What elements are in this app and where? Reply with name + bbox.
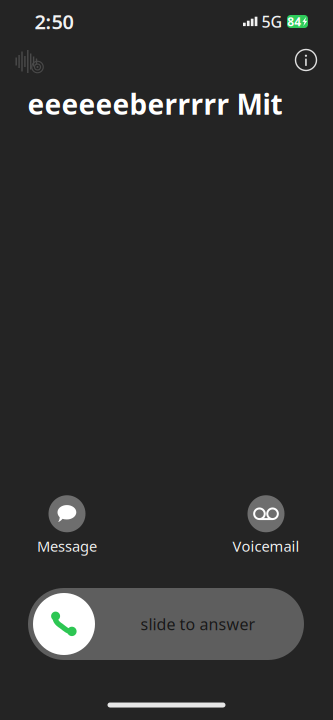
button[interactable]: Call details xyxy=(293,47,319,73)
staticText: Message xyxy=(37,536,97,556)
staticText: Voicemail xyxy=(232,536,299,556)
staticText: 5G xyxy=(261,11,282,32)
staticText: slide to answer xyxy=(140,613,255,635)
button[interactable]: slide to answer xyxy=(28,588,304,660)
staticText: 2:50 xyxy=(34,8,73,35)
button[interactable]: Voicemail xyxy=(220,497,312,553)
button[interactable]: Message xyxy=(21,497,113,553)
staticText: 84 xyxy=(287,13,301,29)
staticText: eeeeeeberrrrr Mit xyxy=(27,85,282,123)
